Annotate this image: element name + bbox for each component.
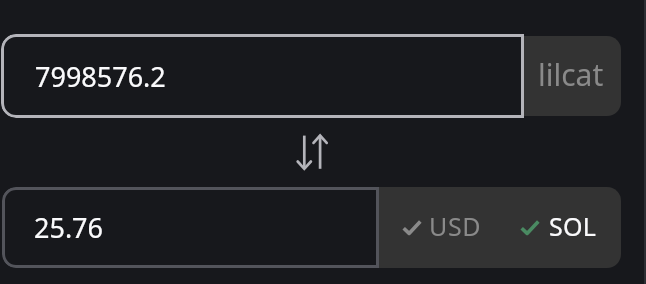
button[interactable]: lilcat xyxy=(523,36,621,116)
staticText: lilcat xyxy=(538,54,604,95)
staticText: SOL xyxy=(549,209,596,243)
staticText: 25.76 xyxy=(34,209,104,246)
button[interactable]: USD xyxy=(402,187,482,268)
button[interactable]: Swap direction xyxy=(284,123,340,181)
staticText: USD xyxy=(429,209,482,243)
button[interactable]: 25.76 xyxy=(2,187,379,268)
button[interactable]: 7998576.2 xyxy=(1,34,524,118)
button[interactable]: SOL xyxy=(520,187,594,268)
staticText: 7998576.2 xyxy=(35,58,166,95)
